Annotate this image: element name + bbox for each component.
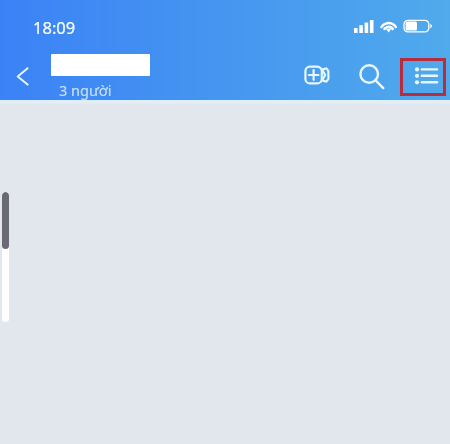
button[interactable]: Menu bbox=[400, 58, 446, 96]
button[interactable]: New video call bbox=[296, 56, 336, 96]
button[interactable]: Back bbox=[6, 58, 42, 94]
button[interactable]: Search bbox=[351, 56, 389, 94]
staticText: 18:09 bbox=[33, 16, 76, 38]
staticText: 3 người bbox=[59, 80, 112, 100]
